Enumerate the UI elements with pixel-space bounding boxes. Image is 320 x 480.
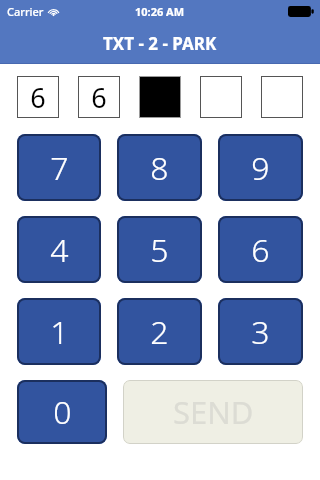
button[interactable]: Key 9 <box>218 134 303 201</box>
staticText: 0 <box>53 390 72 434</box>
button[interactable]: Key 2 <box>117 298 202 365</box>
button[interactable]: SEND <box>123 380 303 444</box>
staticText: SEND <box>173 391 254 433</box>
staticText: 6 <box>91 79 107 116</box>
button[interactable]: Key 0 <box>17 380 107 444</box>
staticText: 5 <box>150 228 169 272</box>
staticText: 4 <box>50 228 69 272</box>
staticText: Carrier <box>7 4 44 19</box>
staticText: TXT - 2 - PARK <box>103 32 217 55</box>
staticText: 6 <box>251 228 270 272</box>
staticText: 3 <box>251 310 270 354</box>
staticText: 6 <box>30 79 46 116</box>
staticText: 9 <box>251 146 270 190</box>
staticText: 10:26 AM <box>135 4 185 19</box>
button[interactable]: Key 5 <box>117 216 202 283</box>
button[interactable]: Key 6 <box>218 216 303 283</box>
staticText: 8 <box>150 146 169 190</box>
button[interactable]: Key 8 <box>117 134 202 201</box>
button[interactable]: Key 4 <box>17 216 101 283</box>
button[interactable]: Key 1 <box>17 298 101 365</box>
button[interactable]: Key 7 <box>17 134 101 201</box>
staticText: 1 <box>50 310 69 354</box>
staticText: 7 <box>50 146 69 190</box>
button[interactable]: Key 3 <box>218 298 303 365</box>
staticText: 2 <box>150 310 169 354</box>
